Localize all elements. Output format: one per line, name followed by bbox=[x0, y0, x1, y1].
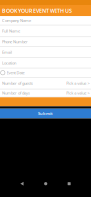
staticText: Location bbox=[2, 60, 16, 65]
staticText: Number of days bbox=[2, 90, 30, 96]
staticText: > bbox=[87, 81, 89, 86]
staticText: Phone Number bbox=[2, 39, 28, 44]
staticText: Pick a value bbox=[66, 90, 86, 96]
staticText: > bbox=[87, 90, 89, 96]
staticText: Submit bbox=[38, 111, 53, 116]
staticText: Email bbox=[2, 49, 12, 55]
button[interactable]: Home bbox=[44, 182, 47, 185]
staticText: Pick a value bbox=[66, 81, 86, 86]
button[interactable]: Recent apps bbox=[68, 182, 71, 185]
staticText: Number of guests bbox=[2, 81, 33, 86]
button[interactable]: Submit bbox=[0, 109, 91, 118]
staticText: BOOK YOUR EVENT WITH US bbox=[2, 7, 72, 14]
staticText: Full Name bbox=[2, 28, 20, 34]
button[interactable]: Number of days bbox=[0, 89, 91, 97]
button[interactable]: Event Date bbox=[0, 68, 91, 78]
button[interactable]: Number of guests bbox=[0, 78, 91, 89]
staticText: Company Name bbox=[2, 18, 31, 23]
staticText: Event Date bbox=[6, 70, 24, 75]
button[interactable]: Back bbox=[20, 182, 24, 186]
